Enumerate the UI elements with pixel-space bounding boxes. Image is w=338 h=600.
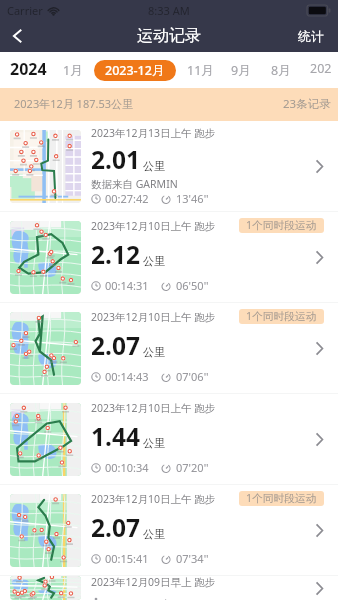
staticText: 2023年12月10日上午 跑步 (91, 401, 216, 415)
button[interactable]: 2023年12月10日上午 跑步 (0, 394, 338, 485)
staticText: 00:14:31 (105, 278, 149, 293)
staticText: 公里 (143, 254, 165, 268)
staticText: 2.01 (91, 143, 140, 176)
staticText: 2024 (10, 58, 47, 80)
staticText: 统计 (298, 28, 324, 44)
staticText: 公里 (143, 436, 165, 450)
staticText: 2023年12月09日早上 跑步 (91, 575, 216, 589)
staticText: 2.07 (91, 511, 140, 544)
staticText: 8:33 AM (148, 3, 190, 18)
staticText: 运动记录 (137, 26, 201, 46)
button[interactable]: 2022 (310, 60, 338, 81)
staticText: 1月 (63, 62, 83, 79)
button[interactable]: 1个同时段运动 (239, 309, 324, 324)
staticText: 00:14:43 (105, 369, 149, 384)
staticText: 11月 (187, 62, 214, 79)
button[interactable]: 1个同时段运动 (239, 491, 324, 506)
staticText: 2023年12月10日上午 跑步 (91, 219, 216, 233)
button[interactable]: 8月 (271, 60, 291, 81)
staticText: 数据来自 GARMIN (91, 177, 178, 191)
staticText: 2023-12月 (105, 62, 165, 79)
staticText: 公里 (143, 527, 165, 541)
staticText: 1.44 (91, 420, 140, 453)
staticText: 06'50'' (176, 278, 209, 293)
staticText: 2.07 (91, 329, 140, 362)
staticText: 07'34'' (176, 551, 209, 566)
button[interactable]: 2023年12月10日上午 跑步 (0, 212, 338, 303)
staticText: 00:10:34 (105, 460, 149, 475)
button[interactable]: 9月 (231, 60, 251, 81)
button[interactable]: 2023年12月10日上午 跑步 (0, 485, 338, 576)
button[interactable]: 统计 (293, 24, 329, 48)
staticText: 2023年12月10日上午 跑步 (91, 492, 216, 506)
staticText: 2023年12月 187.53公里 (14, 96, 134, 111)
staticText: 13'46'' (176, 191, 209, 206)
staticText: 07'20'' (176, 460, 209, 475)
staticText: 2022 (310, 60, 338, 81)
staticText: 00:15:41 (105, 551, 149, 566)
staticText: 1个同时段运动 (246, 218, 317, 233)
staticText: 07'06'' (176, 369, 209, 384)
staticText: 公里 (143, 159, 165, 173)
button[interactable]: 1月 (63, 60, 83, 81)
button[interactable]: 2023-12月 (94, 60, 176, 81)
staticText: 2023年12月10日上午 跑步 (91, 310, 216, 324)
button[interactable]: 11月 (187, 60, 214, 81)
staticText: Carrier (7, 3, 43, 18)
button[interactable]: 1个同时段运动 (239, 218, 324, 233)
staticText: 8月 (271, 62, 291, 79)
button[interactable]: Back (0, 20, 34, 52)
staticText: 2.00 (91, 594, 140, 599)
staticText: 9月 (231, 62, 251, 79)
staticText: 00:27:42 (105, 191, 149, 206)
staticText: 公里 (143, 345, 165, 359)
staticText: 2.12 (91, 238, 140, 271)
staticText: 2023年12月13日上午 跑步 (91, 126, 216, 140)
staticText: 1个同时段运动 (246, 309, 317, 324)
button[interactable]: 2023年12月13日上午 跑步 (0, 121, 338, 212)
staticText: 1个同时段运动 (246, 491, 317, 506)
button[interactable]: 2023年12月09日早上 跑步 (0, 576, 338, 600)
button[interactable]: 2023年12月10日上午 跑步 (0, 303, 338, 394)
staticText: 23条记录 (283, 96, 331, 112)
